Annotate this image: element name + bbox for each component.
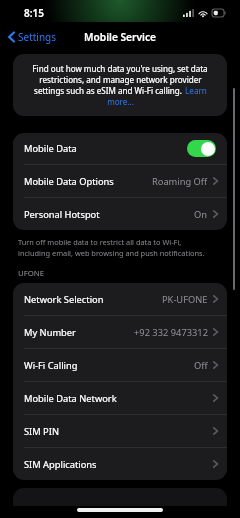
staticText: Mobile Data Network xyxy=(24,392,213,405)
button[interactable]: My Number xyxy=(13,316,227,348)
button[interactable]: Settings xyxy=(0,27,63,47)
staticText: On xyxy=(194,208,208,221)
button[interactable]: Mobile Data Network xyxy=(13,382,227,414)
button[interactable]: SIM PIN xyxy=(13,415,227,447)
other: Mobile Data toggle xyxy=(187,140,216,157)
staticText: SIM Applications xyxy=(24,458,213,471)
staticText: UFONE xyxy=(18,268,45,279)
button[interactable]: more... xyxy=(107,96,134,107)
staticText: Mobile Service xyxy=(84,30,157,44)
staticText: Network Selection xyxy=(24,293,162,306)
staticText: 8:15 xyxy=(24,6,44,20)
staticText: Settings xyxy=(18,30,57,44)
button[interactable]: Mobile Data xyxy=(13,133,227,164)
staticText: Find out how much data you're using, set… xyxy=(32,63,208,74)
staticText: restrictions, and manage network provide… xyxy=(39,74,202,85)
staticText: settings such as eSIM and Wi-Fi calling. xyxy=(34,85,183,96)
button[interactable]: Wi-Fi Calling xyxy=(13,349,227,381)
staticText: Personal Hotspot xyxy=(24,208,194,221)
staticText: Roaming Off xyxy=(152,175,208,188)
staticText: Off xyxy=(194,359,208,372)
staticText: Mobile Data Options xyxy=(24,175,152,188)
button[interactable]: Mobile Data Options xyxy=(13,165,227,197)
button[interactable]: SIM Applications xyxy=(13,448,227,480)
staticText: SIM PIN xyxy=(24,425,213,438)
staticText: more... xyxy=(107,96,134,107)
staticText: PK-UFONE xyxy=(162,293,208,306)
button[interactable]: Personal Hotspot xyxy=(13,198,227,230)
staticText: Wi-Fi Calling xyxy=(24,359,194,372)
button[interactable]: Network Selection xyxy=(13,283,227,315)
staticText: Mobile Data xyxy=(24,142,187,155)
staticText: Turn off mobile data to restrict all dat… xyxy=(18,237,205,258)
staticText: +92 332 9473312 xyxy=(134,326,208,339)
staticText: My Number xyxy=(24,326,134,339)
staticText: Learn xyxy=(183,85,207,96)
button[interactable]: Learn xyxy=(183,85,207,96)
